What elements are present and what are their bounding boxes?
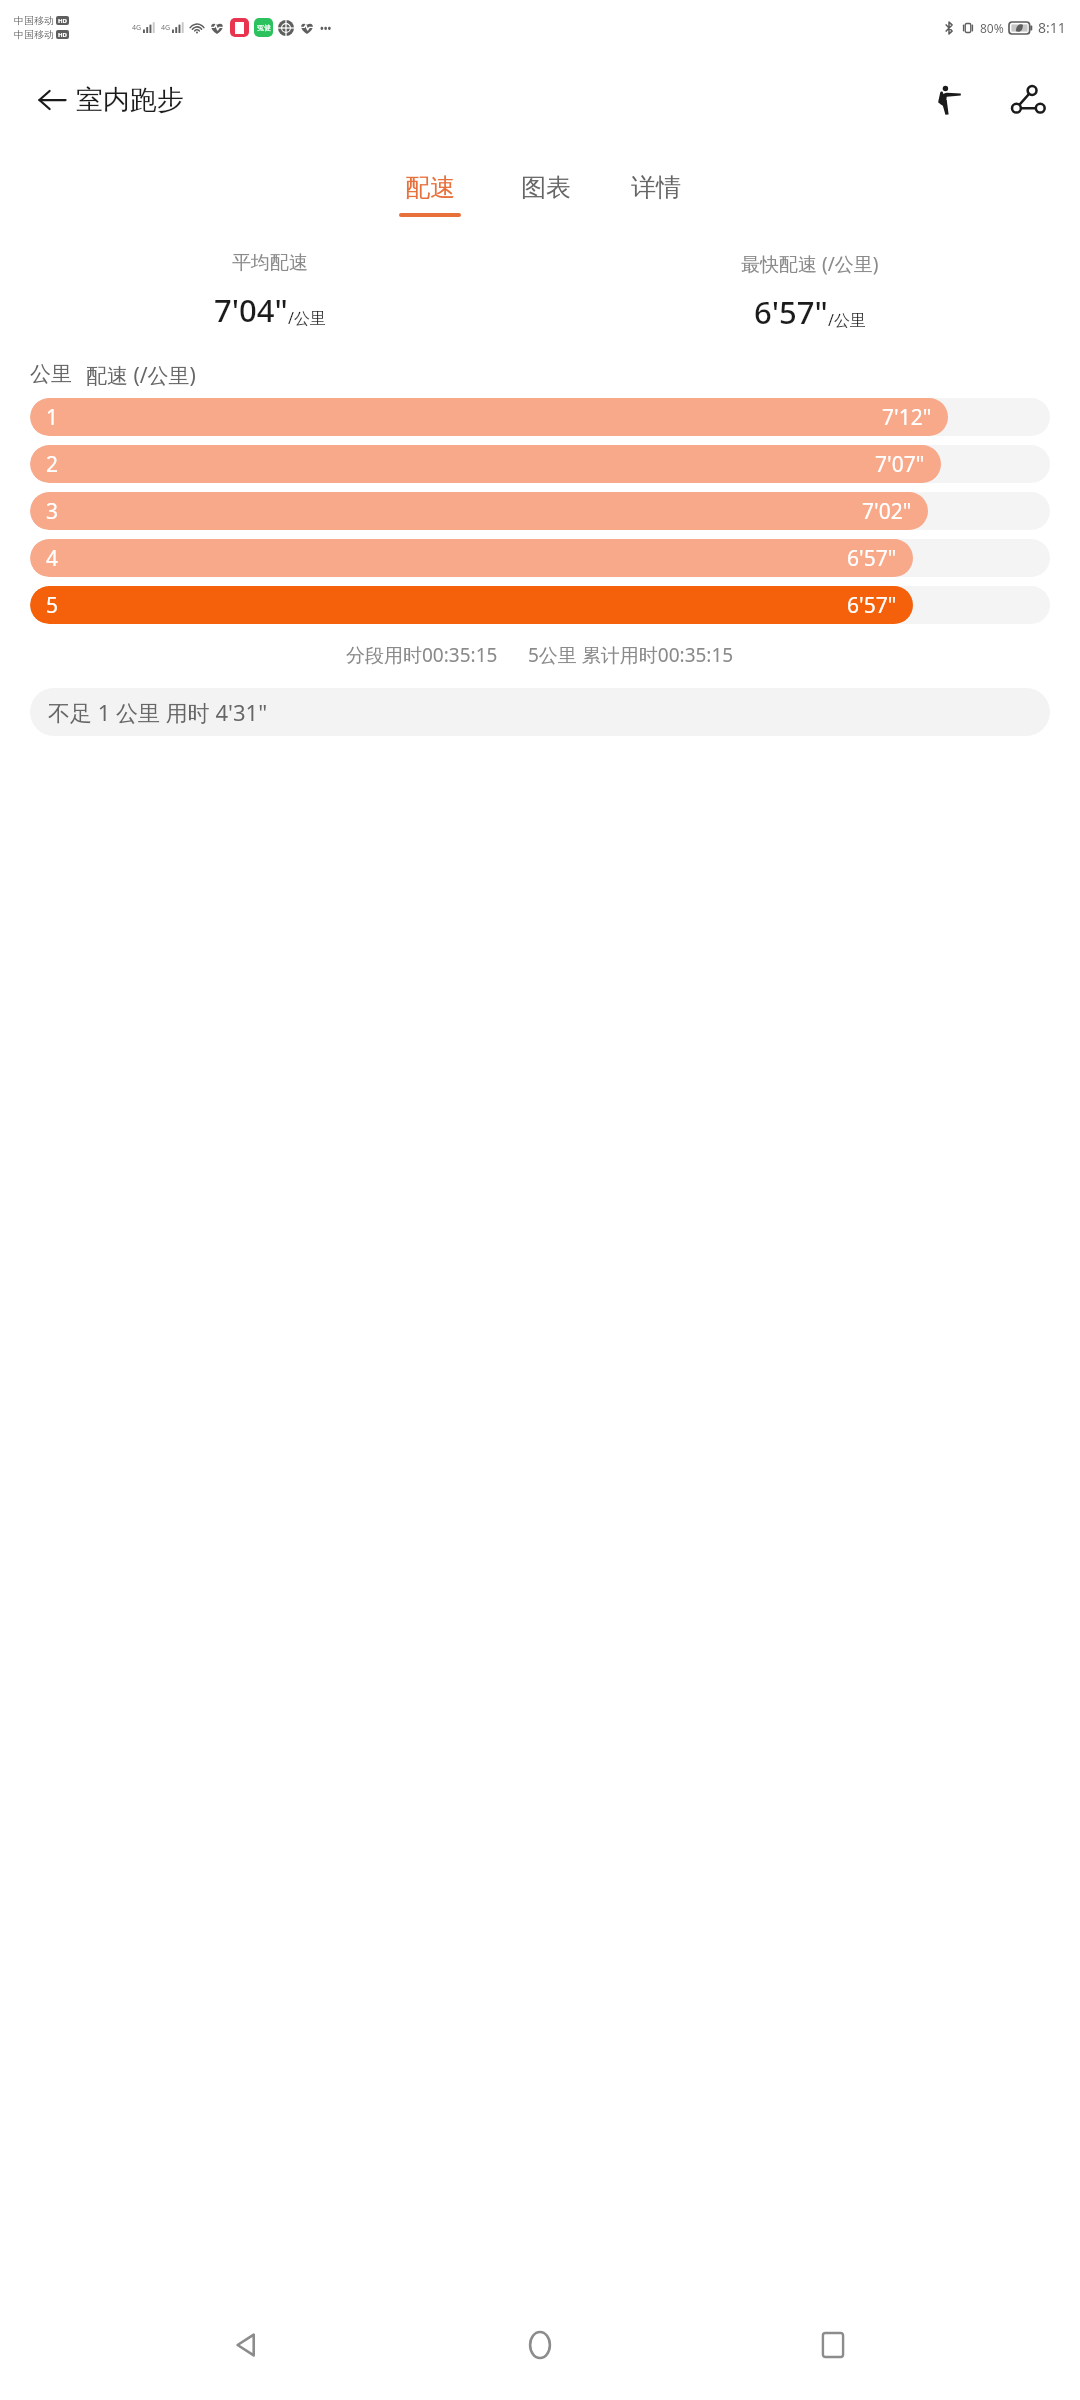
staticText: 不足 1 公里 用时 4'31" [48,697,268,727]
button[interactable]: Back [24,72,80,128]
staticText: 6'57" [754,291,828,333]
staticText: 配速 [405,172,455,203]
staticText: 4G [161,23,171,33]
button[interactable]: 不足 1 公里 用时 4'31" [30,688,1050,736]
staticText: 中国移动 [14,28,54,41]
button[interactable]: Recents [788,2300,878,2390]
staticText: 公里 [30,361,72,387]
staticText: 2 [46,450,59,479]
staticText: 8:11 [1038,18,1066,37]
staticText: 平均配速 [232,251,308,275]
staticText: 80% [980,20,1004,36]
button[interactable]: 3 [30,492,1050,530]
button[interactable]: 1 [30,398,1050,436]
staticText: 中国移动 [14,14,54,27]
staticText: 3 [46,497,59,526]
staticText: 配速 (/公里) [86,361,196,390]
staticText: 分段用时00:35:15 [346,642,498,668]
button[interactable]: 4 [30,539,1050,577]
staticText: HD [58,17,67,25]
staticText: 6'57" [847,591,897,620]
staticText: /公里 [288,307,326,329]
staticText: /公里 [828,309,866,331]
staticText: 图表 [521,172,571,203]
staticText: 详情 [631,172,681,203]
staticText: 5 [46,591,59,620]
button[interactable]: 图表 [513,168,579,221]
button[interactable]: 5 [30,586,1050,624]
staticText: 4 [46,544,59,573]
staticText: 4G [132,23,142,33]
staticText: 7'07" [875,450,925,479]
staticText: HD [58,31,67,39]
button[interactable]: Activity type [918,70,978,130]
button[interactable]: Share [998,70,1058,130]
button[interactable]: 2 [30,445,1050,483]
staticText: 6'57" [847,544,897,573]
staticText: 5公里 累计用时00:35:15 [528,642,734,668]
staticText: ••• [320,21,332,35]
staticText: 最快配速 (/公里) [741,251,879,277]
staticText: 室内跑步 [76,83,184,117]
button[interactable]: 配速 [391,168,469,221]
staticText: 7'04" [214,289,288,331]
staticText: 7'02" [862,497,912,526]
button[interactable]: 详情 [623,168,689,221]
staticText: 1 [46,403,59,432]
staticText: 7'12" [882,403,932,432]
button[interactable]: Home [495,2300,585,2390]
button[interactable]: Back [203,2300,293,2390]
staticText: 冤健 [257,23,271,32]
